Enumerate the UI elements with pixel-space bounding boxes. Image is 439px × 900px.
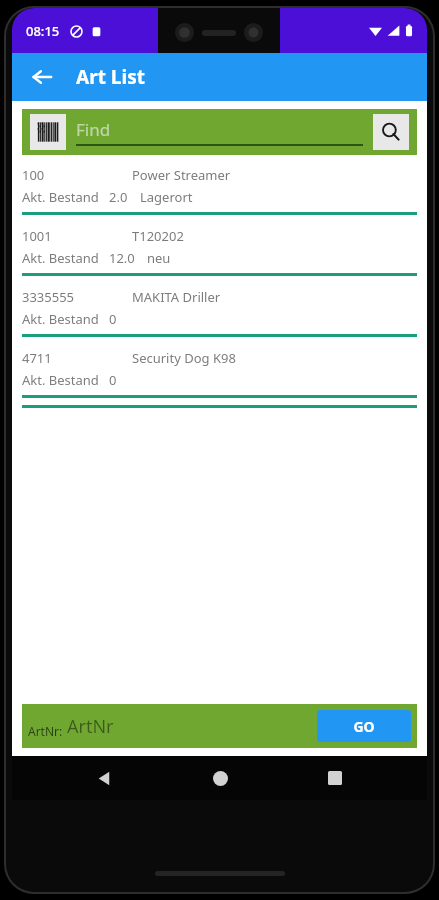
button[interactable]: 100: [12, 161, 427, 222]
staticText: 1001: [22, 227, 132, 245]
staticText: 08:15: [26, 22, 60, 40]
button[interactable]: Search: [373, 114, 409, 150]
button[interactable]: Back: [20, 55, 64, 99]
staticText: Akt. Bestand: [22, 371, 99, 389]
staticText: 3335555: [22, 288, 132, 306]
button[interactable]: Recent apps: [311, 756, 359, 800]
button[interactable]: Home: [196, 756, 244, 800]
staticText: Art List: [76, 64, 145, 90]
staticText: Security Dog K98: [132, 349, 236, 367]
staticText: MAKITA Driller: [132, 288, 221, 306]
staticText: 0: [109, 371, 117, 389]
staticText: 0: [109, 310, 117, 328]
staticText: 12.0: [109, 249, 135, 267]
staticText: Power Streamer: [132, 166, 231, 184]
staticText: neu: [147, 249, 171, 267]
staticText: 4711: [22, 349, 132, 367]
staticText: Lagerort: [140, 188, 193, 206]
staticText: ArtNr: [67, 714, 114, 739]
staticText: 100: [22, 166, 132, 184]
button[interactable]: Find: [76, 118, 363, 146]
staticText: Find: [76, 118, 111, 141]
button[interactable]: GO: [317, 710, 411, 742]
button[interactable]: ArtNr:: [28, 714, 317, 739]
button[interactable]: Scan barcode: [30, 114, 66, 150]
staticText: GO: [353, 717, 375, 736]
staticText: 2.0: [109, 188, 128, 206]
button[interactable]: 1001: [12, 222, 427, 283]
button[interactable]: 3335555: [12, 283, 427, 344]
staticText: Akt. Bestand: [22, 249, 99, 267]
button[interactable]: Back: [80, 756, 128, 800]
staticText: Akt. Bestand: [22, 188, 99, 206]
staticText: ArtNr:: [28, 723, 63, 739]
staticText: T120202: [132, 227, 184, 245]
staticText: Akt. Bestand: [22, 310, 99, 328]
button[interactable]: 4711: [12, 344, 427, 405]
